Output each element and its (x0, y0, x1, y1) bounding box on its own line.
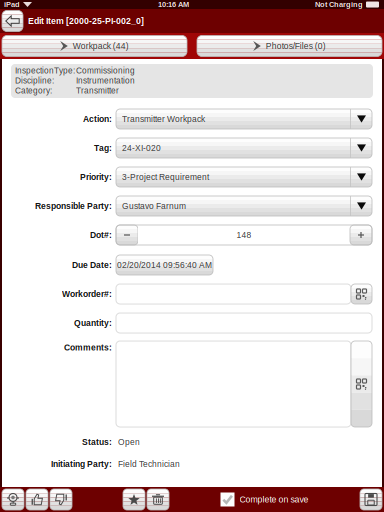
staticText: Due Date: (72, 260, 112, 270)
staticText: Quantity: (74, 318, 112, 328)
button[interactable]: 3-Project Requirement (112, 167, 372, 187)
staticText: Category: (15, 86, 52, 95)
staticText: iPad (4, 0, 20, 9)
button[interactable]: 02/20/2014 09:56:40 AM (112, 255, 213, 275)
button[interactable]: Record audio (2, 489, 24, 510)
staticText: Comments: (64, 343, 112, 352)
button[interactable]: Favourite (123, 489, 145, 510)
staticText: Edit Item [2000-25-PI-002_0] (28, 16, 144, 26)
staticText: Discipline: (15, 76, 54, 85)
button[interactable]: Accept (26, 489, 48, 510)
staticText: 24-XI-020 (122, 143, 161, 153)
staticText: Priority: (80, 172, 112, 182)
staticText: Initiating Party: (51, 459, 112, 469)
staticText: InspectionType: (15, 66, 75, 75)
staticText: Transmitter Workpack (122, 114, 205, 124)
staticText: Transmitter (76, 86, 119, 95)
button[interactable]: Transmitter Workpack (112, 109, 372, 129)
button[interactable]: Reject (50, 489, 72, 510)
staticText: Instrumentation (76, 76, 135, 85)
button[interactable]: Gustavo Farnum (112, 196, 372, 216)
button[interactable] (112, 284, 372, 304)
staticText: 02/20/2014 09:56:40 AM (117, 260, 212, 270)
button[interactable]: Photos/Files (0) (197, 35, 384, 56)
staticText: Photos/Files (0) (266, 41, 326, 51)
staticText: 3-Project Requirement (122, 172, 209, 182)
button[interactable]: Complete on save (220, 492, 308, 506)
button[interactable]: 24-XI-020 (112, 138, 372, 158)
button[interactable] (112, 313, 372, 333)
staticText: Workpack (44) (73, 41, 129, 51)
staticText: Workorder#: (62, 289, 112, 299)
button[interactable]: Back (0, 10, 23, 31)
button[interactable]: Delete (147, 489, 169, 510)
staticText: Field Technician (118, 459, 180, 469)
button[interactable]: Save (360, 489, 382, 510)
staticText: Gustavo Farnum (122, 201, 186, 211)
staticText: Commissioning (76, 66, 135, 75)
button[interactable] (112, 341, 372, 427)
staticText: Open (118, 437, 140, 447)
button[interactable]: Workpack (44) (0, 35, 187, 56)
staticText: Action: (83, 114, 112, 124)
staticText: 10:16 AM (158, 0, 189, 9)
staticText: 148 (236, 230, 251, 240)
staticText: Dot#: (90, 230, 112, 240)
staticText: Tag: (94, 143, 112, 153)
button[interactable]: Increase (350, 225, 372, 245)
staticText: Status: (82, 437, 112, 447)
button[interactable]: Decrease (116, 225, 138, 245)
staticText: Complete on save (239, 495, 308, 504)
staticText: Not Charging (315, 0, 363, 9)
staticText: Responsible Party: (35, 201, 112, 211)
